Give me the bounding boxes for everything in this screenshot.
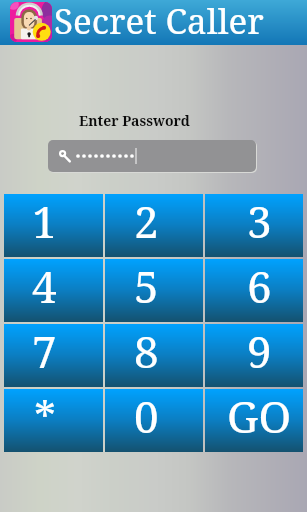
staticText: Enter Password [0,111,288,130]
staticText: * [34,386,56,446]
staticText: 2 [134,191,159,251]
button[interactable]: * [4,389,103,452]
staticText: 3 [247,191,272,251]
button[interactable]: 9 [205,324,303,387]
staticText: 7 [32,321,57,381]
staticText: GO [227,386,292,446]
staticText: 5 [134,256,159,316]
button[interactable]: 7 [4,324,103,387]
button[interactable]: 6 [205,259,303,322]
staticText: 1 [32,191,57,251]
button[interactable]: 4 [4,259,103,322]
button[interactable]: 8 [105,324,203,387]
button[interactable]: GO [205,389,303,452]
staticText: 6 [247,256,272,316]
button[interactable]: 0 [105,389,203,452]
other: Secret Caller app icon [10,2,52,42]
button[interactable]: 1 [4,194,103,257]
staticText: 4 [32,256,57,316]
staticText: 0 [134,386,159,446]
button[interactable]: Password field [48,140,256,172]
button[interactable]: 5 [105,259,203,322]
staticText: 9 [247,321,272,381]
staticText: Secret Caller [54,0,264,42]
button[interactable]: 2 [105,194,203,257]
staticText: 8 [134,321,159,381]
button[interactable]: 3 [205,194,303,257]
